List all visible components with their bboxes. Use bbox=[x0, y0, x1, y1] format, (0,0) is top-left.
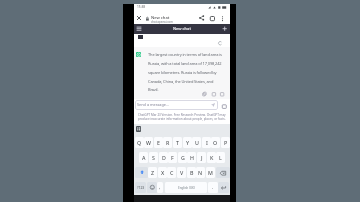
button[interactable]: , bbox=[157, 182, 163, 193]
button[interactable]: D bbox=[159, 152, 168, 163]
staticText: S bbox=[152, 154, 155, 161]
button[interactable]: P bbox=[221, 137, 230, 148]
staticText: produce inaccurate information about peo… bbox=[138, 117, 226, 121]
button[interactable]: V bbox=[177, 167, 186, 178]
button[interactable]: I bbox=[202, 137, 211, 148]
button[interactable]: F bbox=[168, 152, 177, 163]
button[interactable]: W bbox=[144, 137, 153, 148]
staticText: New chat bbox=[151, 15, 170, 21]
staticText: ?123 bbox=[137, 185, 145, 190]
staticText: G bbox=[181, 154, 185, 161]
staticText: P bbox=[224, 139, 228, 146]
staticText: B bbox=[190, 169, 194, 176]
button[interactable] bbox=[218, 182, 229, 193]
staticText: L bbox=[219, 154, 222, 161]
button[interactable] bbox=[216, 167, 230, 178]
button[interactable]: R bbox=[163, 137, 172, 148]
button[interactable]: L bbox=[216, 152, 225, 163]
staticText: V bbox=[180, 169, 184, 176]
button[interactable]: E bbox=[154, 137, 163, 148]
staticText: Russia, with a total land area of 17,098… bbox=[148, 61, 222, 66]
staticText: R bbox=[166, 139, 170, 146]
button[interactable] bbox=[136, 26, 142, 31]
staticText: square kilometres. Russia is followed by bbox=[148, 70, 217, 75]
button[interactable]: T bbox=[173, 137, 182, 148]
button[interactable] bbox=[222, 26, 227, 31]
staticText: The largest country in terms of land are… bbox=[148, 52, 222, 57]
staticText: W bbox=[146, 139, 151, 146]
button[interactable] bbox=[210, 16, 215, 21]
button[interactable] bbox=[147, 182, 157, 193]
button[interactable] bbox=[136, 126, 141, 132]
button[interactable]: Z bbox=[148, 167, 157, 178]
button[interactable]: X bbox=[158, 167, 167, 178]
button[interactable]: G bbox=[178, 152, 187, 163]
staticText: Brazil. bbox=[148, 87, 159, 92]
staticText: ChatGPT Mar 23 Version. Free Research Pr… bbox=[138, 113, 226, 117]
button[interactable]: H bbox=[187, 152, 196, 163]
staticText: I bbox=[206, 139, 208, 146]
button[interactable]: English (UK) bbox=[165, 182, 207, 193]
staticText: O bbox=[213, 139, 218, 146]
button[interactable]: Q bbox=[135, 137, 144, 148]
staticText: F bbox=[171, 154, 174, 161]
staticText: . bbox=[212, 184, 214, 191]
staticText: X bbox=[161, 169, 165, 176]
staticText: A bbox=[142, 154, 146, 161]
button[interactable]: S bbox=[149, 152, 158, 163]
button[interactable] bbox=[136, 15, 142, 21]
staticText: , bbox=[159, 184, 161, 191]
button[interactable]: ?123 bbox=[135, 182, 146, 193]
button[interactable]: J bbox=[197, 152, 206, 163]
staticText: New chat bbox=[173, 26, 191, 32]
staticText: D bbox=[162, 154, 166, 161]
staticText: J bbox=[201, 154, 203, 161]
staticText: T bbox=[176, 139, 179, 146]
staticText: English (UK) bbox=[178, 186, 195, 190]
staticText: C bbox=[170, 169, 174, 176]
button[interactable]: C bbox=[167, 167, 176, 178]
staticText: Canada, China, the United States, and bbox=[148, 79, 214, 84]
button[interactable]: N bbox=[196, 167, 205, 178]
button[interactable]: New chat bbox=[151, 15, 170, 21]
staticText: Y bbox=[186, 139, 190, 146]
staticText: U bbox=[195, 139, 199, 146]
button[interactable]: O bbox=[211, 137, 220, 148]
button[interactable]: K bbox=[207, 152, 216, 163]
staticText: Send a message... bbox=[137, 102, 169, 107]
staticText: M bbox=[208, 169, 213, 176]
button[interactable]: U bbox=[192, 137, 201, 148]
staticText: 15:38 bbox=[137, 5, 146, 9]
button[interactable]: Send a message... bbox=[135, 100, 218, 110]
staticText: H bbox=[190, 154, 194, 161]
button[interactable]: . bbox=[208, 182, 218, 193]
staticText: Q bbox=[137, 139, 142, 146]
staticText: E bbox=[157, 139, 160, 146]
button[interactable]: M bbox=[206, 167, 215, 178]
button[interactable] bbox=[221, 16, 224, 21]
button[interactable] bbox=[199, 15, 204, 21]
button[interactable]: A bbox=[139, 152, 148, 163]
staticText: K bbox=[210, 154, 214, 161]
staticText: chat.openai.com bbox=[151, 20, 173, 24]
staticText: Z bbox=[151, 169, 155, 176]
button[interactable]: B bbox=[187, 167, 196, 178]
button[interactable]: Y bbox=[183, 137, 192, 148]
staticText: N bbox=[198, 169, 203, 176]
button[interactable] bbox=[135, 167, 148, 178]
